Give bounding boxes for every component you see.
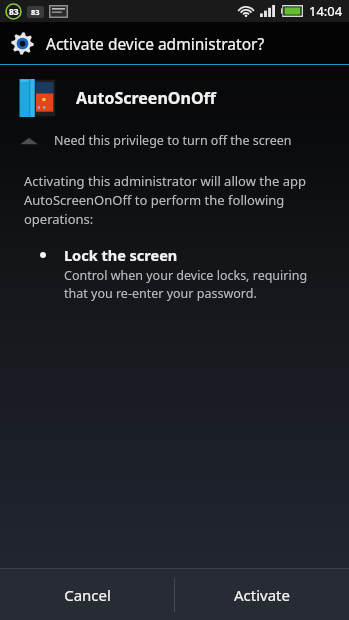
staticText: 83 [9, 6, 19, 18]
staticText: Cancel [64, 585, 111, 605]
staticText: Control when your device locks, requirin… [64, 267, 308, 302]
staticText: 83 [31, 7, 40, 17]
staticText: 14:04 [309, 2, 343, 20]
staticText: Need this privilege to turn off the scre… [54, 132, 292, 149]
staticText: Activating this administrator will allow… [24, 172, 307, 228]
button[interactable]: Activate [175, 569, 349, 620]
staticText: Activate [234, 585, 290, 605]
staticText: Activate device administrator? [46, 33, 265, 54]
staticText: AutoScreenOnOff [76, 87, 216, 109]
button[interactable]: Cancel [0, 569, 174, 620]
staticText: Lock the screen [64, 245, 178, 265]
other: Collapse details [18, 134, 40, 148]
button[interactable]: Collapse details [0, 129, 349, 152]
